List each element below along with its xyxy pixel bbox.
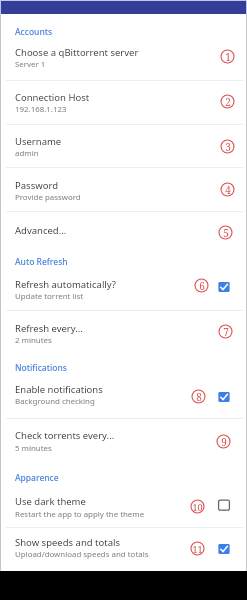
button[interactable]: Use dark theme disabled (218, 499, 230, 511)
button[interactable] (1, 488, 246, 527)
button[interactable] (1, 81, 246, 124)
staticText: Background checking (15, 396, 95, 407)
button[interactable] (1, 528, 246, 568)
button[interactable] (1, 270, 246, 310)
staticText: Notifications (15, 362, 67, 374)
button[interactable] (1, 419, 246, 460)
staticText: 2 (225, 95, 231, 109)
button[interactable] (1, 38, 246, 80)
button[interactable]: Enable notifications enabled (218, 391, 230, 403)
staticText: Advanced... (15, 224, 67, 237)
button[interactable]: Refresh automatically? enabled (218, 281, 230, 293)
staticText: Enable notifications (15, 383, 103, 396)
staticText: Choose a qBittorrent server (15, 46, 139, 59)
staticText: 9 (221, 435, 227, 449)
staticText: 4 (225, 183, 231, 197)
staticText: Restart the app to apply the theme (15, 509, 145, 520)
staticText: Server 1 (15, 59, 46, 70)
staticText: 5 (223, 226, 229, 240)
staticText: 7 (223, 325, 229, 339)
staticText: 10 (192, 501, 203, 513)
staticText: Show speeds and totals (15, 536, 121, 549)
staticText: admin (15, 148, 39, 159)
staticText: 3 (225, 140, 231, 154)
staticText: Refresh automatically? (15, 278, 116, 291)
staticText: 5 minutes (15, 443, 52, 454)
staticText: Upload/download speeds and totals (15, 549, 149, 560)
staticText: 11 (192, 543, 203, 555)
button[interactable] (1, 168, 246, 211)
staticText: Password (15, 179, 58, 192)
staticText: Use dark theme (15, 495, 86, 508)
staticText: 192.168.1.123 (15, 104, 67, 115)
button[interactable] (1, 125, 246, 167)
staticText: 6 (199, 279, 205, 293)
staticText: Refresh every... (15, 322, 83, 335)
staticText: 8 (196, 390, 202, 404)
staticText: 1 (225, 50, 231, 64)
staticText: Provide password (15, 192, 81, 203)
staticText: Accounts (15, 26, 53, 38)
staticText: 2 minutes (15, 335, 52, 346)
staticText: Apparence (15, 472, 59, 484)
button[interactable] (1, 376, 246, 418)
button[interactable] (1, 311, 246, 350)
staticText: Check torrents every... (15, 429, 115, 442)
staticText: Connection Host (15, 91, 90, 104)
button[interactable] (1, 212, 246, 248)
button[interactable]: Show speeds and totals enabled (218, 543, 230, 555)
staticText: Update torrent list (15, 291, 84, 302)
staticText: Username (15, 135, 62, 148)
staticText: Auto Refresh (15, 256, 68, 268)
